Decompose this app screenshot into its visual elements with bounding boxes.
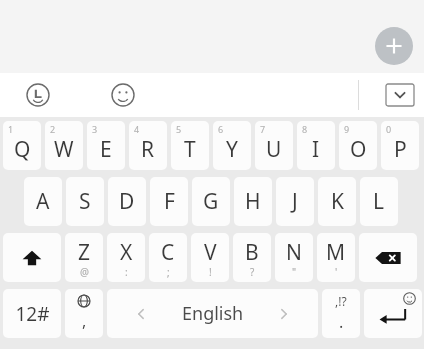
staticText: :: [125, 265, 128, 279]
staticText: ,: [82, 310, 87, 332]
staticText: D: [119, 187, 135, 216]
staticText: W: [54, 135, 74, 164]
button[interactable]: 5: [171, 121, 209, 170]
button[interactable]: H: [234, 177, 272, 226]
staticText: V: [204, 238, 217, 267]
staticText: L: [373, 187, 385, 216]
button[interactable]: M: [317, 233, 355, 282]
staticText: A: [36, 187, 50, 216]
button[interactable]: Comma and language: [65, 289, 103, 338]
button[interactable]: English: [107, 289, 318, 338]
staticText: H: [245, 187, 261, 216]
staticText: ': [335, 265, 338, 279]
staticText: 9: [344, 123, 350, 135]
staticText: T: [184, 135, 196, 164]
staticText: 6: [218, 123, 224, 135]
button[interactable]: Emoji: [110, 82, 136, 108]
staticText: M: [326, 238, 346, 267]
button[interactable]: 4: [129, 121, 167, 170]
staticText: B: [245, 238, 259, 267]
staticText: R: [141, 135, 155, 164]
button[interactable]: L: [360, 177, 398, 226]
button[interactable]: G: [192, 177, 230, 226]
staticText: G: [203, 187, 219, 216]
staticText: K: [331, 187, 344, 216]
button[interactable]: Z: [65, 233, 103, 282]
button[interactable]: 0: [381, 121, 419, 170]
staticText: Q: [14, 135, 31, 164]
button[interactable]: Punctuation: [322, 289, 360, 338]
button[interactable]: N: [275, 233, 313, 282]
staticText: N: [286, 238, 302, 267]
staticText: ;: [167, 265, 170, 279]
staticText: !: [209, 265, 212, 279]
staticText: J: [292, 187, 298, 216]
button[interactable]: C: [149, 233, 187, 282]
button[interactable]: 7: [255, 121, 293, 170]
staticText: 8: [302, 123, 308, 135]
button[interactable]: J: [276, 177, 314, 226]
staticText: 1: [8, 123, 14, 135]
staticText: C: [161, 238, 175, 267]
staticText: @: [80, 265, 89, 279]
button[interactable]: B: [233, 233, 271, 282]
button[interactable]: 8: [297, 121, 335, 170]
staticText: .: [339, 311, 344, 333]
button[interactable]: Symbols: [3, 289, 61, 338]
staticText: 2: [50, 123, 56, 135]
staticText: U: [266, 135, 282, 164]
button[interactable]: K: [318, 177, 356, 226]
staticText: Y: [226, 135, 238, 164]
button[interactable]: X: [107, 233, 145, 282]
staticText: 3: [92, 123, 98, 135]
staticText: 4: [134, 123, 140, 135]
staticText: E: [100, 135, 112, 164]
button[interactable]: Shift: [3, 233, 61, 282]
button[interactable]: 9: [339, 121, 377, 170]
staticText: Z: [78, 238, 91, 267]
button[interactable]: 3: [87, 121, 125, 170]
button[interactable]: Add: [375, 27, 413, 65]
button[interactable]: Enter: [364, 289, 422, 338]
button[interactable]: Hide keyboard: [386, 84, 414, 106]
button[interactable]: A: [24, 177, 62, 226]
button[interactable]: V: [191, 233, 229, 282]
staticText: English: [182, 301, 244, 326]
button[interactable]: 2: [45, 121, 83, 170]
button[interactable]: Backspace: [359, 233, 417, 282]
staticText: S: [79, 187, 91, 216]
button[interactable]: Handwriting: [25, 82, 51, 108]
staticText: 5: [176, 123, 182, 135]
staticText: O: [350, 135, 367, 164]
staticText: I: [312, 135, 320, 164]
staticText: X: [120, 238, 133, 267]
staticText: ?: [250, 265, 255, 279]
button[interactable]: F: [150, 177, 188, 226]
button[interactable]: 1: [3, 121, 41, 170]
button[interactable]: S: [66, 177, 104, 226]
staticText: F: [164, 187, 175, 216]
staticText: 0: [386, 123, 392, 135]
button[interactable]: 6: [213, 121, 251, 170]
staticText: 12#: [15, 301, 50, 327]
staticText: ,!?: [335, 293, 347, 309]
staticText: P: [394, 135, 407, 164]
staticText: 7: [260, 123, 266, 135]
staticText: ": [292, 265, 297, 279]
button[interactable]: D: [108, 177, 146, 226]
